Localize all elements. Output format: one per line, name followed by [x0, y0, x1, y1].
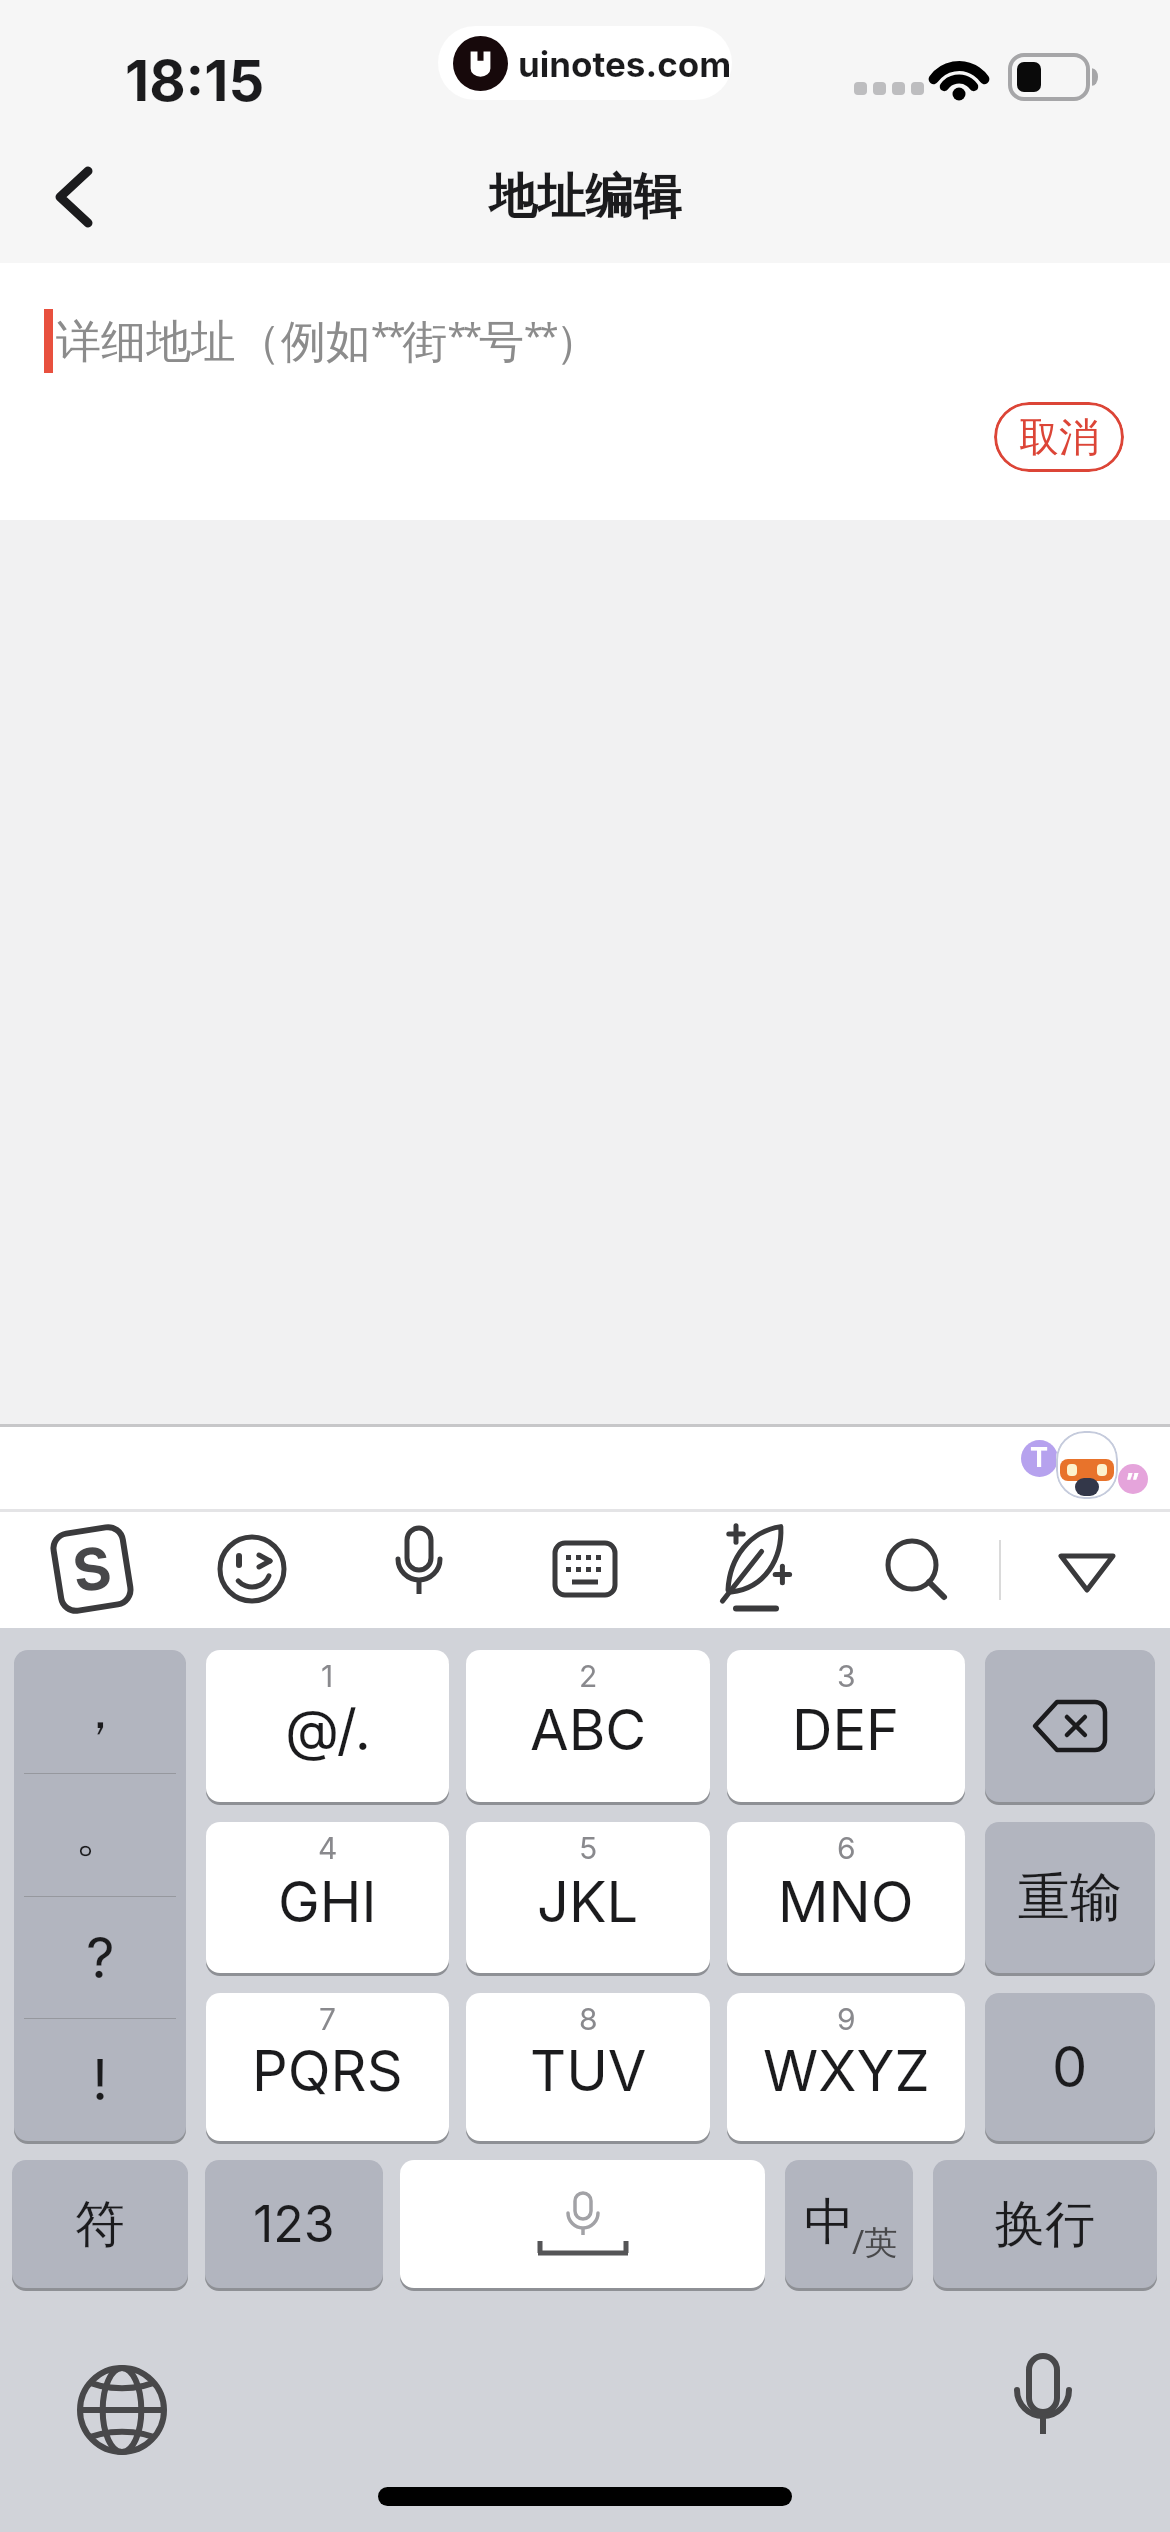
staticText: 2: [579, 1658, 598, 1694]
button[interactable]: 123: [205, 2160, 383, 2288]
staticText: 0: [1052, 2033, 1088, 2101]
staticText: 中: [804, 2191, 854, 2254]
staticText: @/.: [285, 1696, 371, 1764]
button[interactable]: [985, 1650, 1155, 1802]
button[interactable]: 0: [985, 1993, 1155, 2141]
button[interactable]: [217, 1534, 287, 1604]
button[interactable]: S: [48, 1522, 136, 1616]
button[interactable]: ，: [14, 1650, 186, 2141]
button[interactable]: 8: [466, 1993, 710, 2141]
staticText: ABC: [530, 1696, 647, 1764]
staticText: PQRS: [252, 2037, 403, 2105]
staticText: 9: [837, 2001, 856, 2037]
staticText: 123: [253, 2194, 335, 2254]
staticText: 重输: [1018, 1865, 1122, 1931]
button[interactable]: 重输: [985, 1822, 1155, 1973]
button[interactable]: 1: [206, 1650, 449, 1802]
staticText: MNO: [778, 1868, 914, 1936]
button[interactable]: 取消: [994, 402, 1124, 472]
staticText: 详细地址（例如**街**号**）: [56, 312, 601, 371]
staticText: ”: [1127, 1464, 1139, 1490]
button[interactable]: 9: [727, 1993, 965, 2141]
button[interactable]: 7: [206, 1993, 449, 2141]
button[interactable]: [884, 1537, 950, 1603]
staticText: 1: [321, 1658, 334, 1694]
staticText: 4: [318, 1830, 338, 1866]
staticText: 3: [837, 1658, 856, 1694]
staticText: /英: [852, 2219, 898, 2264]
button[interactable]: 4: [206, 1822, 449, 1973]
staticText: uinotes.com: [518, 43, 732, 85]
button[interactable]: [1057, 1552, 1117, 1594]
button[interactable]: 5: [466, 1822, 710, 1973]
staticText: 符: [75, 2193, 125, 2256]
button[interactable]: 换行: [933, 2160, 1157, 2288]
staticText: ?: [86, 1924, 115, 1992]
staticText: 取消: [1019, 412, 1099, 462]
staticText: 。: [75, 1803, 125, 1866]
staticText: !: [92, 2046, 109, 2114]
button[interactable]: [1012, 2352, 1074, 2468]
button[interactable]: 符: [12, 2160, 188, 2288]
staticText: T: [1030, 1441, 1049, 1474]
staticText: 6: [837, 1830, 856, 1866]
staticText: 换行: [995, 2193, 1095, 2256]
staticText: 地址编辑: [489, 167, 681, 227]
button[interactable]: 中: [785, 2160, 913, 2288]
button[interactable]: [712, 1522, 792, 1614]
button[interactable]: 2: [466, 1650, 710, 1802]
staticText: 8: [579, 2001, 598, 2037]
staticText: TUV: [530, 2037, 647, 2105]
staticText: 18:15: [125, 47, 265, 109]
button[interactable]: [76, 2364, 168, 2456]
staticText: 7: [319, 2001, 336, 2037]
button[interactable]: 6: [727, 1822, 965, 1973]
staticText: DEF: [792, 1696, 900, 1764]
button[interactable]: [553, 1541, 617, 1597]
staticText: ，: [75, 1680, 125, 1743]
staticText: GHI: [278, 1868, 377, 1936]
button[interactable]: [400, 2160, 765, 2288]
button[interactable]: 3: [727, 1650, 965, 1802]
staticText: JKL: [537, 1868, 639, 1936]
button[interactable]: [52, 166, 96, 228]
staticText: S: [67, 1531, 117, 1607]
button[interactable]: [393, 1528, 445, 1610]
staticText: 5: [579, 1830, 598, 1866]
staticText: WXYZ: [763, 2037, 930, 2105]
